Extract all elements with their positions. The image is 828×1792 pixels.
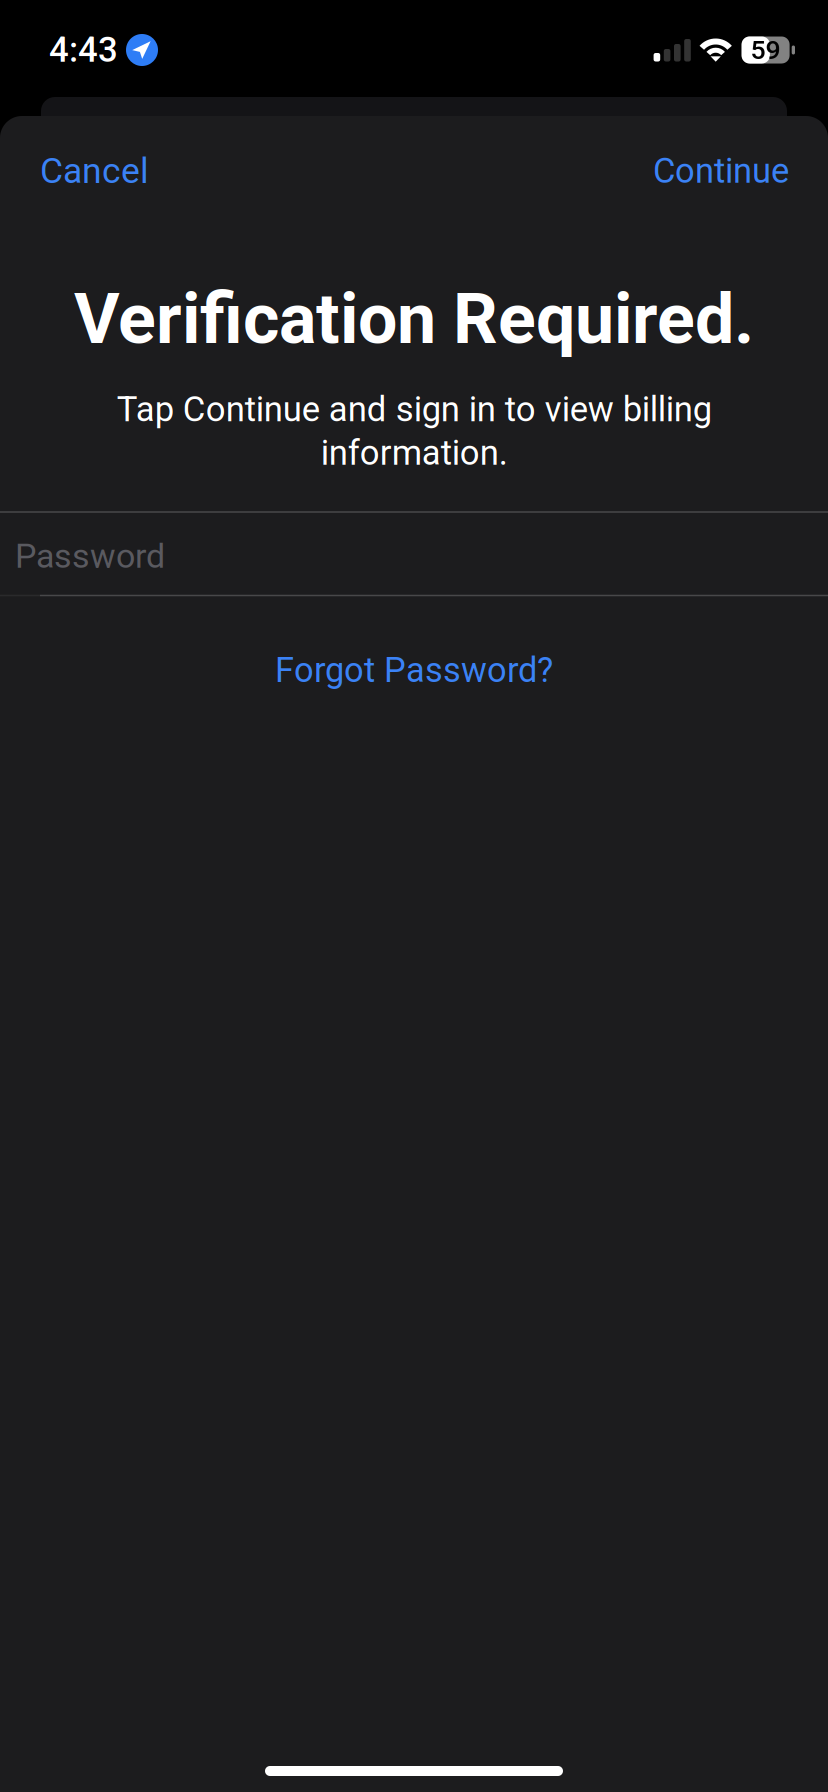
staticText: Cancel: [40, 150, 149, 192]
button[interactable]: Password: [0, 513, 828, 595]
button[interactable]: Forgot Password?: [251, 646, 577, 694]
staticText: 4:43: [49, 30, 118, 70]
staticText: Continue: [653, 151, 789, 191]
button[interactable]: Continue: [629, 127, 789, 215]
staticText: Password: [15, 536, 165, 576]
staticText: Forgot Password?: [275, 650, 553, 690]
staticText: Verification Required.: [74, 278, 754, 360]
staticText: 59: [751, 34, 781, 66]
staticText: Tap Continue and sign in to view billing…: [116, 389, 711, 473]
button[interactable]: Cancel: [40, 127, 173, 215]
